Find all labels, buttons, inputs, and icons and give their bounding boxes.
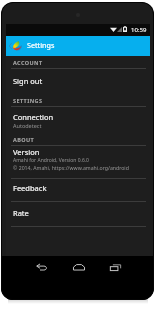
button[interactable]: Back	[23, 256, 60, 278]
button[interactable]: Feedback	[6, 179, 150, 201]
staticText: ACCOUNT	[13, 59, 43, 66]
staticText: Autodetect	[13, 122, 42, 129]
staticText: Amahi for Android, Version 0.6.0	[13, 157, 89, 164]
staticText: Settings	[27, 40, 55, 50]
staticText: Sign out	[13, 76, 43, 86]
button[interactable]: Connection	[6, 107, 150, 134]
button[interactable]: Navigate up	[6, 36, 14, 56]
button[interactable]: Recent apps	[97, 256, 134, 278]
staticText: Connection	[13, 112, 54, 122]
button[interactable]: Rate	[6, 202, 150, 226]
button[interactable]: Home	[60, 256, 97, 278]
staticText: Feedback	[13, 183, 47, 193]
button[interactable]: Sign out	[6, 69, 150, 94]
staticText: ABOUT	[13, 136, 35, 143]
button[interactable]: Version	[6, 146, 150, 178]
staticText: 10:59	[131, 26, 147, 34]
staticText: SETTINGS	[13, 97, 43, 104]
staticText: Rate	[13, 208, 29, 218]
staticText: Version	[13, 147, 40, 157]
staticText: © 2014, Amahi, https://www.amahi.org/and…	[13, 164, 129, 171]
